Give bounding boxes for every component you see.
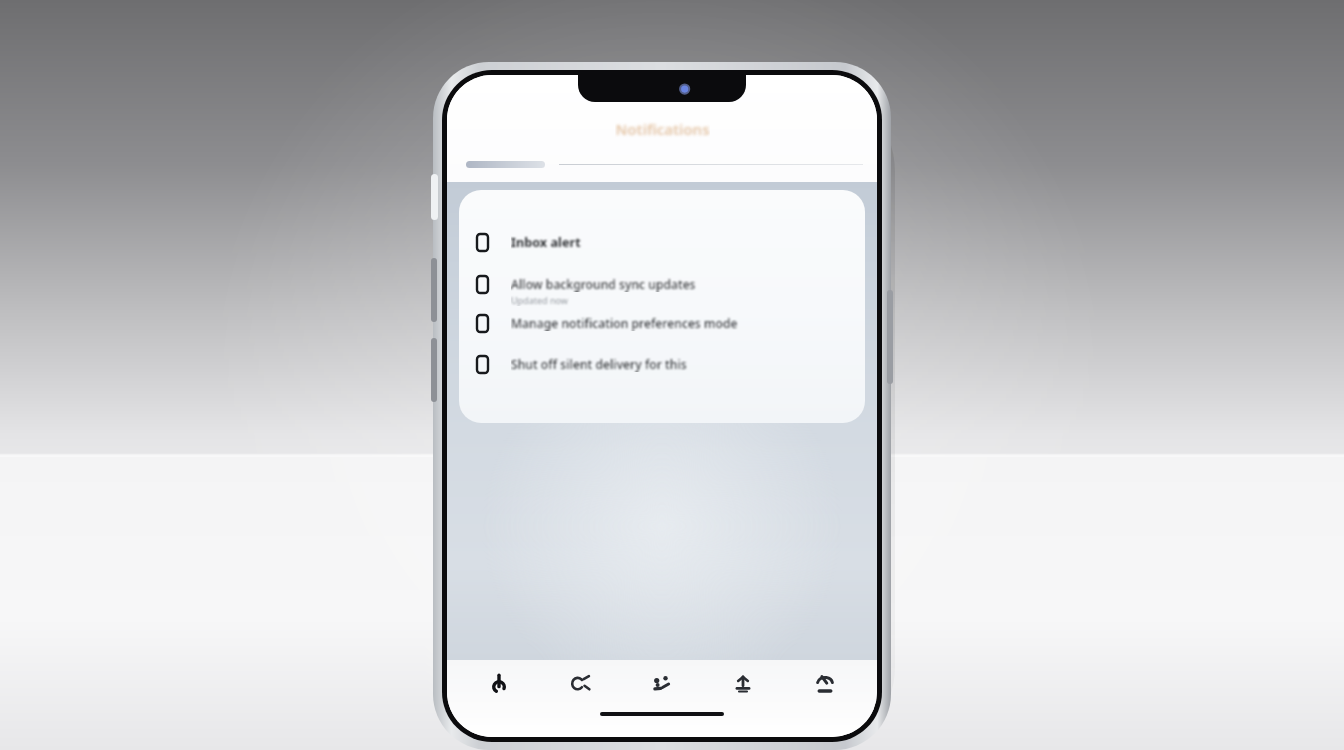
staticText: Notifications [615,119,710,139]
staticText: Shut off silent delivery for this [511,356,754,372]
staticText: Updated now [511,294,646,306]
button[interactable]: Profile [796,662,854,706]
button[interactable]: Library [714,662,772,706]
button[interactable]: Manage notification preferences mode [477,315,849,337]
button[interactable]: Inbox alert [477,234,849,256]
button[interactable]: Selected tab [466,161,545,168]
button[interactable]: Home [470,662,528,706]
button[interactable]: Allow background sync updates [477,276,849,306]
button[interactable]: Shut off silent delivery for this [477,356,849,378]
staticText: Manage notification preferences mode [511,315,832,331]
staticText: Allow background sync updates [511,276,775,292]
button[interactable]: Activity [633,662,691,706]
staticText: Inbox alert [511,234,633,251]
button[interactable]: Discover [552,662,610,706]
